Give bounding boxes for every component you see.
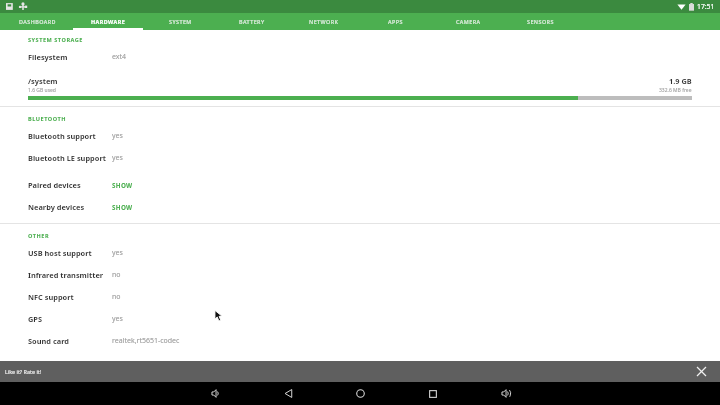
staticText: Bluetooth LE support <box>28 153 106 163</box>
staticText: OTHER <box>28 232 50 240</box>
staticText: BATTERY <box>239 18 265 25</box>
button[interactable]: Infrared transmitter <box>0 264 720 286</box>
button[interactable]: Paired devices <box>0 174 720 196</box>
button[interactable]: Nearby devices <box>0 196 720 218</box>
button[interactable]: Input devices <box>0 352 720 374</box>
staticText: SENSORS <box>527 18 554 25</box>
staticText: yes <box>112 248 123 258</box>
staticText: realtek,rt5651-codec <box>112 336 180 346</box>
button[interactable]: DASHBOARD <box>2 13 72 30</box>
button[interactable]: Volume up <box>488 382 522 405</box>
button[interactable]: NFC support <box>0 286 720 308</box>
button[interactable]: USB host support <box>0 242 720 264</box>
staticText: NETWORK <box>309 18 339 25</box>
staticText: 17:51 <box>697 2 715 11</box>
staticText: GPS <box>28 314 43 324</box>
staticText: Filesystem <box>28 52 68 62</box>
button[interactable]: Close <box>693 363 710 380</box>
button[interactable]: Bluetooth support <box>0 125 720 147</box>
staticText: 1.9 GB <box>669 76 692 86</box>
button[interactable]: /system <box>0 76 720 100</box>
button[interactable]: SYSTEM <box>145 13 215 30</box>
staticText: 1.6 GB used <box>28 87 56 94</box>
staticText: SHOW <box>112 203 133 212</box>
staticText: Nearby devices <box>28 202 85 212</box>
button[interactable]: Home <box>343 382 377 405</box>
staticText: APPS <box>388 18 403 25</box>
staticText: yes <box>112 314 123 324</box>
staticText: CAMERA <box>456 18 481 25</box>
button[interactable]: Sound card <box>0 330 720 352</box>
staticText: no <box>112 270 121 280</box>
staticText: Paired devices <box>28 180 81 190</box>
staticText: NFC support <box>28 292 74 302</box>
staticText: 332.6 MB free <box>659 87 692 94</box>
staticText: Like it? Rate it! <box>5 368 42 375</box>
staticText: ext4 <box>112 52 127 62</box>
staticText: USB host support <box>28 248 92 258</box>
staticText: Sound card <box>28 336 69 346</box>
staticText: SHOW <box>112 359 133 368</box>
button[interactable]: Filesystem <box>0 46 720 68</box>
button[interactable]: CAMERA <box>433 13 503 30</box>
button[interactable]: Volume down <box>198 382 232 405</box>
button[interactable]: APPS <box>360 13 430 30</box>
staticText: SYSTEM <box>169 18 192 25</box>
button[interactable]: Recents <box>416 382 450 405</box>
button[interactable]: BATTERY <box>217 13 287 30</box>
staticText: yes <box>112 131 123 141</box>
staticText: yes <box>112 153 123 163</box>
staticText: Infrared transmitter <box>28 270 104 280</box>
staticText: BLUETOOTH <box>28 115 66 123</box>
button[interactable]: NETWORK <box>289 13 359 30</box>
staticText: /system <box>28 76 58 86</box>
staticText: no <box>112 292 121 302</box>
staticText: SYSTEM STORAGE <box>28 36 83 44</box>
button[interactable]: HARDWARE <box>73 13 143 30</box>
button[interactable]: GPS <box>0 308 720 330</box>
staticText: Bluetooth support <box>28 131 96 141</box>
staticText: Input devices <box>28 358 78 368</box>
staticText: DASHBOARD <box>19 18 56 25</box>
button[interactable]: Bluetooth LE support <box>0 147 720 169</box>
button[interactable]: Like it? Rate it! <box>0 361 720 382</box>
button[interactable]: SENSORS <box>505 13 575 30</box>
staticText: HARDWARE <box>91 18 126 25</box>
staticText: SHOW <box>112 181 133 190</box>
button[interactable]: Back <box>271 382 305 405</box>
